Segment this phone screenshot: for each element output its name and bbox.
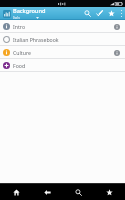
staticText: Italy [13,15,20,20]
button[interactable]: Bookmarks [105,7,117,20]
button[interactable]: Food [0,59,125,72]
button[interactable]: Intro [0,20,125,33]
button[interactable]: Culture [0,46,125,59]
button[interactable]: Edit notes [93,7,105,20]
button[interactable]: Background [13,7,81,20]
staticText: Intro [13,23,111,30]
button[interactable]: Back [32,184,63,200]
button[interactable]: Info about Intro [111,21,122,32]
staticText: Italian Phrasebook [13,36,111,43]
button[interactable]: More options [117,7,125,20]
button[interactable]: Home [0,184,32,200]
button[interactable]: Italian Phrasebook [0,33,125,46]
button[interactable]: Navigate up [1,8,12,19]
button[interactable]: Search [63,184,94,200]
button[interactable]: Search [81,7,93,20]
staticText: Background [13,7,46,15]
staticText: Culture [13,49,111,56]
staticText: Food [13,62,111,69]
button[interactable]: Favourites [94,184,125,200]
button[interactable]: Info about Culture [111,47,122,58]
